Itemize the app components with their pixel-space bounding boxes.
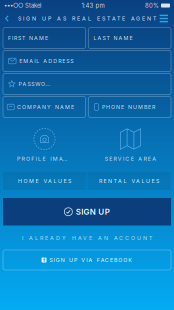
staticText: PROFILE IMAGE	[17, 155, 72, 162]
staticText: EMAIL ADDRESS	[19, 58, 73, 64]
staticText: FIRST NAME	[8, 35, 48, 41]
button[interactable]: HOME VALUES	[3, 172, 86, 190]
staticText: 1:43 pm	[81, 2, 104, 9]
staticText: I ALREADY HAVE AN ACCOUNT	[22, 235, 152, 241]
button[interactable]: SIGN UP	[3, 198, 171, 225]
button[interactable]: RENTAL VALUES	[87, 172, 170, 190]
staticText: SERVICE AREA	[105, 155, 156, 162]
button[interactable]: f	[3, 250, 171, 270]
staticText: HOME VALUES	[18, 178, 71, 184]
staticText: 80%	[145, 2, 159, 9]
staticText: PASSWORD	[19, 81, 54, 87]
staticText: f	[43, 257, 45, 263]
staticText: •••○○ Stakel	[4, 2, 41, 9]
button[interactable]: Menu	[154, 12, 174, 25]
staticText: SIGN UP	[76, 207, 110, 217]
button[interactable]: PROFILE IMAGE	[0, 128, 88, 162]
staticText: PHONE NUMBER	[102, 104, 155, 110]
staticText: SIGN UP AS REAL ESTATE AGENT	[18, 15, 156, 22]
staticText: SIGN UP VIA FACEBOOK	[49, 257, 132, 263]
staticText: LAST NAME	[93, 35, 132, 41]
staticText: COMPANY NAME	[17, 104, 74, 110]
staticText: RENTAL VALUES	[99, 178, 159, 184]
button[interactable]: I ALREADY HAVE AN ACCOUNT	[3, 226, 171, 250]
button[interactable]: Back	[0, 12, 15, 25]
button[interactable]: SERVICE AREA	[86, 128, 174, 162]
